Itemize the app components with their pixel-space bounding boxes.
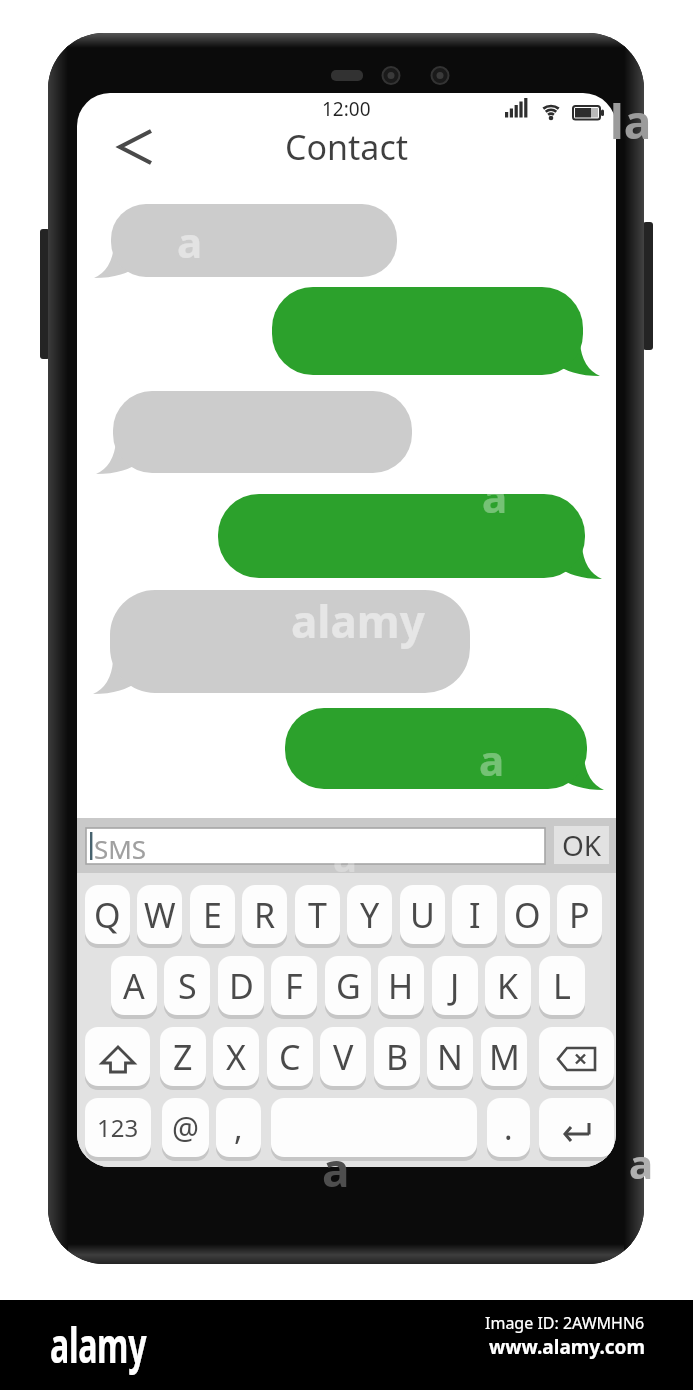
staticText: la	[610, 90, 652, 153]
staticText: 123	[97, 1111, 139, 1144]
staticText: V	[333, 1034, 354, 1080]
staticText: N	[437, 1034, 463, 1080]
button[interactable]: G	[325, 956, 371, 1019]
staticText: C	[279, 1034, 301, 1080]
button[interactable]: D	[218, 956, 264, 1019]
button[interactable]: 123	[85, 1098, 151, 1161]
staticText: ,	[234, 1106, 243, 1150]
staticText: a	[629, 1136, 653, 1190]
button[interactable]: A	[111, 956, 157, 1019]
button[interactable]: V	[320, 1027, 366, 1090]
staticText: L	[553, 963, 571, 1009]
button[interactable]: E	[190, 885, 235, 948]
staticText: D	[229, 963, 254, 1009]
button[interactable]: I	[452, 885, 497, 948]
staticText: P	[569, 892, 590, 938]
staticText: a	[482, 468, 508, 525]
staticText: Image ID: 2AWMHN6	[485, 1312, 645, 1334]
staticText: A	[123, 963, 145, 1009]
staticText: a	[333, 829, 357, 883]
button[interactable]: OK	[554, 826, 609, 864]
button[interactable]: S	[164, 956, 210, 1019]
staticText: K	[497, 963, 519, 1009]
staticText: alamy	[291, 591, 425, 651]
button[interactable]: C	[267, 1027, 313, 1090]
button[interactable]: J	[432, 956, 478, 1019]
button[interactable]: @	[162, 1098, 209, 1161]
staticText: B	[386, 1034, 409, 1080]
staticText: X	[226, 1034, 246, 1080]
staticText: Z	[173, 1034, 193, 1080]
button[interactable]: U	[400, 885, 445, 948]
staticText: H	[388, 963, 414, 1009]
button[interactable]	[107, 119, 167, 175]
staticText: W	[144, 892, 176, 938]
staticText: a	[479, 731, 505, 788]
staticText: a	[322, 1138, 350, 1201]
staticText: Q	[94, 892, 121, 938]
staticText: J	[450, 963, 460, 1009]
button[interactable]	[271, 1098, 477, 1161]
button[interactable]: R	[242, 885, 287, 948]
button[interactable]: Y	[347, 885, 392, 948]
staticText: OK	[562, 826, 602, 864]
staticText: a	[177, 213, 203, 270]
button[interactable]	[85, 1027, 150, 1090]
button[interactable]: B	[374, 1027, 420, 1090]
button[interactable]	[539, 1027, 614, 1090]
button[interactable]: K	[485, 956, 531, 1019]
staticText: F	[285, 963, 303, 1009]
button[interactable]: Z	[160, 1027, 206, 1090]
staticText: .	[504, 1106, 513, 1150]
button[interactable]: www.alamy.com	[489, 1334, 645, 1360]
button[interactable]: O	[505, 885, 550, 948]
staticText: SMS	[94, 831, 147, 866]
staticText: Contact	[285, 124, 409, 170]
staticText: O	[514, 892, 541, 938]
staticText: I	[469, 892, 481, 938]
button[interactable]: N	[427, 1027, 473, 1090]
staticText: U	[410, 892, 435, 938]
button[interactable]	[539, 1098, 614, 1161]
button[interactable]: M	[481, 1027, 527, 1090]
button[interactable]: H	[378, 956, 424, 1019]
button[interactable]: L	[539, 956, 585, 1019]
button[interactable]: F	[271, 956, 317, 1019]
staticText: 12:00	[322, 96, 371, 122]
button[interactable]: X	[213, 1027, 259, 1090]
staticText: S	[178, 963, 197, 1009]
staticText: Y	[360, 892, 380, 938]
button[interactable]: Q	[85, 885, 130, 948]
button[interactable]: ,	[216, 1098, 261, 1161]
staticText: M	[489, 1034, 520, 1080]
button[interactable]: P	[557, 885, 602, 948]
button[interactable]: T	[295, 885, 340, 948]
staticText: R	[254, 892, 276, 938]
staticText: T	[308, 892, 327, 938]
staticText: @	[172, 1107, 199, 1148]
staticText: G	[336, 963, 361, 1009]
button[interactable]: .	[487, 1098, 530, 1161]
button[interactable]: alamy	[50, 1312, 146, 1377]
staticText: E	[203, 892, 222, 938]
button[interactable]	[86, 828, 545, 864]
button[interactable]: W	[137, 885, 182, 948]
